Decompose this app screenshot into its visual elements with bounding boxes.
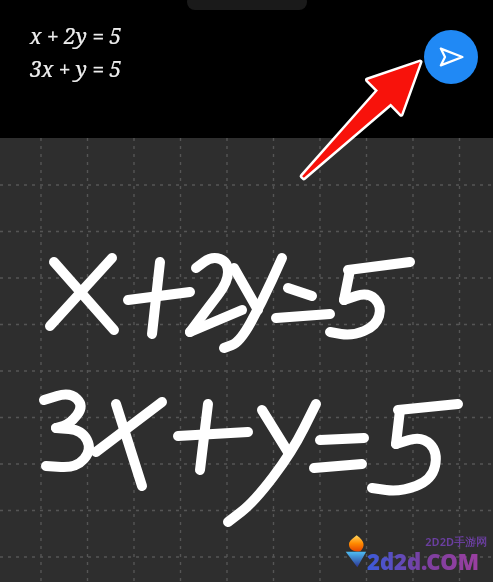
staticText: 2D2D手游网	[425, 534, 487, 549]
staticText: 3x + y = 5	[30, 55, 122, 84]
staticText: x + 2y = 5	[30, 22, 122, 51]
staticText: 2d2d.COM	[367, 546, 479, 576]
button[interactable]: Send	[424, 30, 478, 84]
